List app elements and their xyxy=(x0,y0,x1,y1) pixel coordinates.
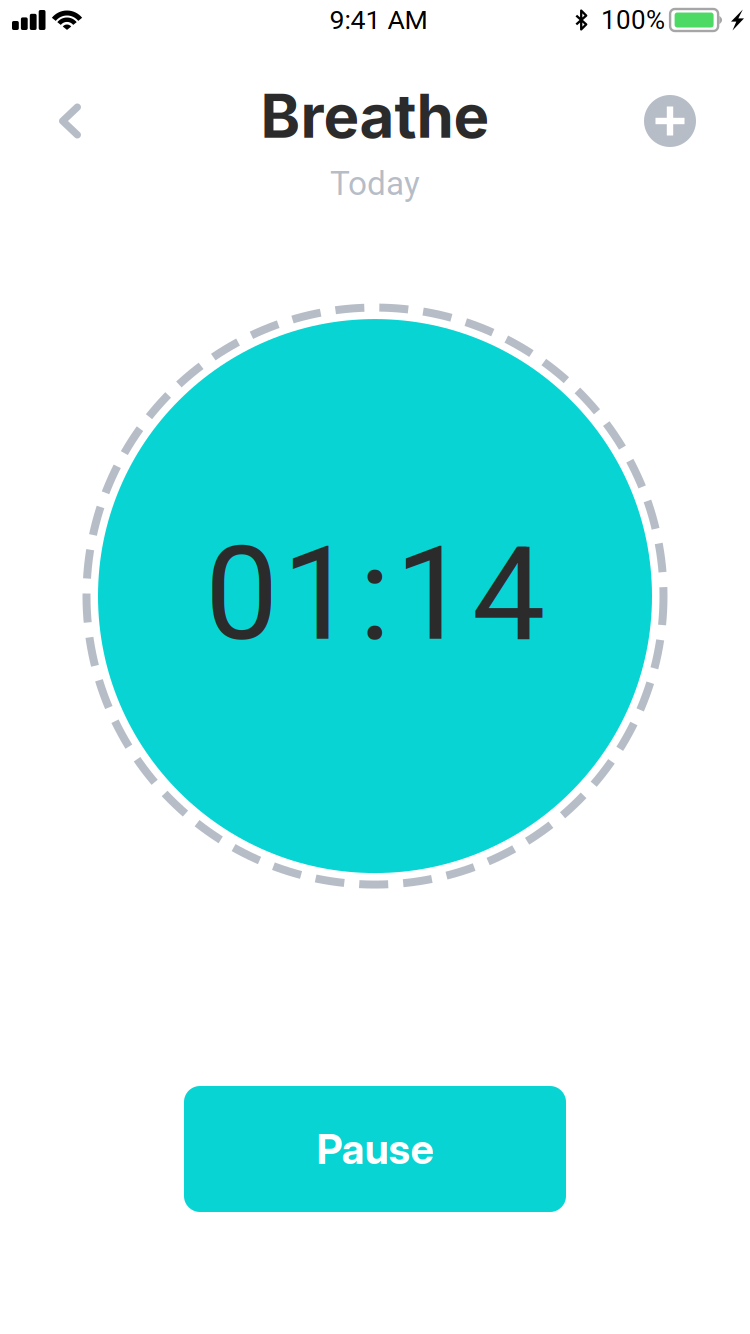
staticText: Breathe xyxy=(260,80,489,152)
staticText: 100% xyxy=(601,5,665,35)
staticText: 01:14 xyxy=(205,517,545,671)
staticText: 9:41 AM xyxy=(329,4,427,36)
button[interactable]: Pause xyxy=(184,1086,566,1212)
button[interactable]: Add session xyxy=(590,76,750,156)
staticText: Today xyxy=(330,164,420,203)
button[interactable]: Back xyxy=(0,76,140,156)
staticText: Pause xyxy=(316,1124,433,1174)
